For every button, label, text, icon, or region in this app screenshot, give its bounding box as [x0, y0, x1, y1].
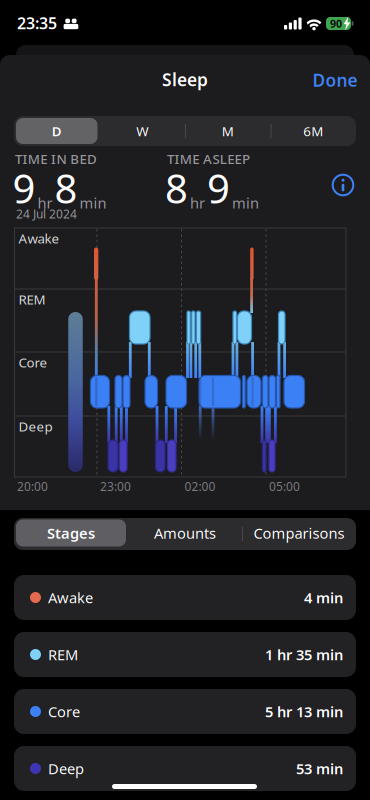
button[interactable]: D [16, 118, 97, 144]
staticText: 8 [165, 161, 188, 215]
staticText: Core [48, 702, 80, 721]
button[interactable]: Amounts [130, 519, 240, 546]
staticText: Deep [18, 417, 52, 435]
staticText: Awake [48, 588, 93, 607]
staticText: min [79, 193, 106, 213]
staticText: Comparisons [253, 523, 344, 543]
staticText: 05:00 [269, 478, 300, 494]
staticText: 23:00 [100, 478, 131, 494]
staticText: Deep [48, 759, 84, 778]
staticText: hr [190, 193, 205, 213]
button[interactable]: Stages [16, 519, 126, 546]
staticText: TIME IN BED [15, 150, 97, 168]
staticText: Sleep [162, 68, 208, 91]
staticText: 9 [12, 161, 35, 215]
button[interactable]: Comparisons [244, 519, 354, 546]
staticText: 8 [54, 161, 77, 215]
staticText: 90 [330, 16, 342, 31]
button[interactable]: W [102, 118, 182, 144]
staticText: W [136, 122, 148, 140]
staticText: 53 min [296, 759, 343, 778]
button[interactable]: Done [312, 68, 357, 91]
staticText: REM [48, 645, 78, 664]
staticText: 24 Jul 2024 [16, 206, 77, 222]
staticText: D [52, 122, 62, 140]
staticText: 23:35 [17, 12, 57, 34]
button[interactable]: M [188, 118, 268, 144]
staticText: M [222, 122, 234, 140]
staticText: 5 hr 13 min [265, 702, 343, 721]
staticText: 9 [207, 161, 230, 215]
staticText: TIME ASLEEP [167, 150, 250, 168]
staticText: Awake [18, 229, 59, 247]
staticText: 6M [303, 122, 323, 140]
staticText: 1 hr 35 min [265, 645, 343, 664]
staticText: 20:00 [17, 478, 48, 494]
staticText: 4 min [304, 588, 343, 607]
button[interactable] [0, 0, 370, 800]
staticText: Stages [47, 523, 95, 543]
staticText: 02:00 [184, 478, 215, 494]
staticText: Core [18, 353, 47, 371]
staticText: min [232, 193, 259, 213]
button[interactable]: 6M [273, 118, 353, 144]
staticText: REM [18, 290, 45, 308]
staticText: Amounts [154, 523, 216, 543]
staticText: Done [312, 68, 357, 91]
staticText: hr [37, 193, 52, 213]
